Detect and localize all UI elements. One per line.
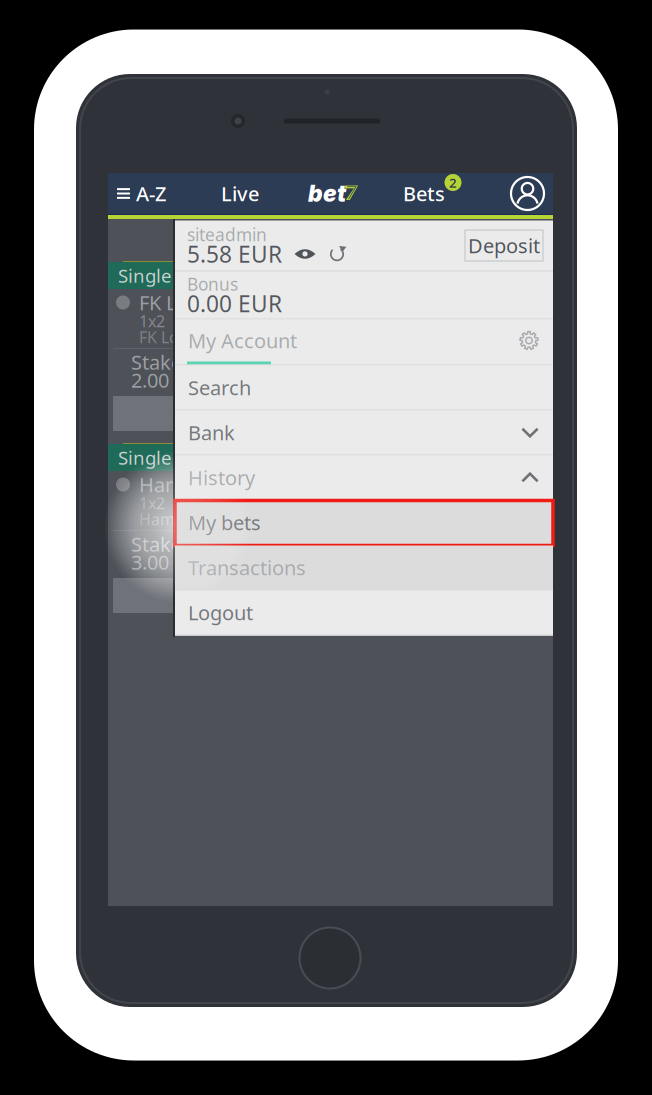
staticText: Stake [131, 531, 182, 557]
staticText: A-Z [136, 180, 166, 207]
staticText: 2 [449, 174, 457, 191]
staticText: Stake [131, 349, 182, 375]
button[interactable]: bet7 home [308, 173, 360, 214]
button[interactable]: Logout [175, 590, 553, 635]
staticText: Live [221, 180, 259, 207]
button[interactable]: Account [505, 173, 553, 214]
staticText: Hamburger SV [139, 508, 250, 530]
staticText: Single @ 1.90 [118, 445, 237, 470]
staticText: 3.00 [131, 549, 169, 575]
staticText: Search [188, 374, 251, 401]
staticText: Logout [188, 599, 253, 626]
staticText: Bank [188, 419, 235, 446]
button[interactable]: Search [175, 365, 553, 410]
button[interactable]: Deposit [465, 230, 543, 261]
button[interactable]: Live [213, 173, 267, 214]
staticText: bet [308, 180, 346, 207]
staticText: siteadmin [187, 223, 267, 246]
staticText: Transactions [188, 554, 306, 581]
button[interactable]: Bank [175, 410, 553, 455]
button[interactable]: My Account [175, 319, 553, 365]
staticText: 1x2 [139, 492, 165, 514]
button[interactable]: My bets [175, 500, 553, 545]
staticText: Bets [403, 180, 445, 207]
staticText: 1x2 [139, 310, 165, 332]
staticText: Hamburger SV [139, 471, 275, 498]
staticText: Bonus [187, 272, 238, 295]
staticText: Single @ 1.90 [118, 263, 237, 288]
staticText: Deposit [468, 232, 540, 259]
button[interactable]: History [175, 455, 553, 500]
staticText: 5.58 EUR [187, 239, 282, 269]
button[interactable]: Transactions [175, 545, 553, 590]
staticText: 2.00 [131, 367, 169, 393]
staticText: 0.00 EUR [187, 288, 282, 318]
staticText: My Account [188, 327, 297, 354]
staticText: FK Lokomotiv [139, 326, 241, 348]
staticText: History [188, 464, 255, 491]
staticText: FK Lokomotiv [139, 289, 264, 316]
button[interactable]: A-Z [108, 173, 172, 214]
button[interactable]: Bets [401, 173, 464, 214]
staticText: My bets [188, 509, 261, 536]
